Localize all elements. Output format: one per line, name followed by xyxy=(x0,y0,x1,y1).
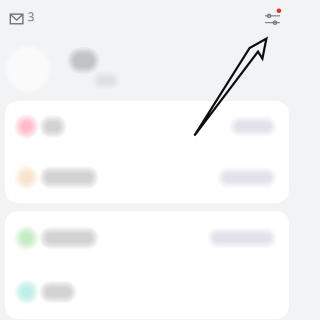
button[interactable] xyxy=(5,211,289,265)
staticText: 3 xyxy=(28,8,35,24)
button[interactable] xyxy=(5,101,289,152)
button[interactable]: Messages xyxy=(10,0,35,34)
button[interactable] xyxy=(5,265,289,319)
button[interactable]: Filter xyxy=(265,2,281,30)
button[interactable] xyxy=(5,152,289,203)
